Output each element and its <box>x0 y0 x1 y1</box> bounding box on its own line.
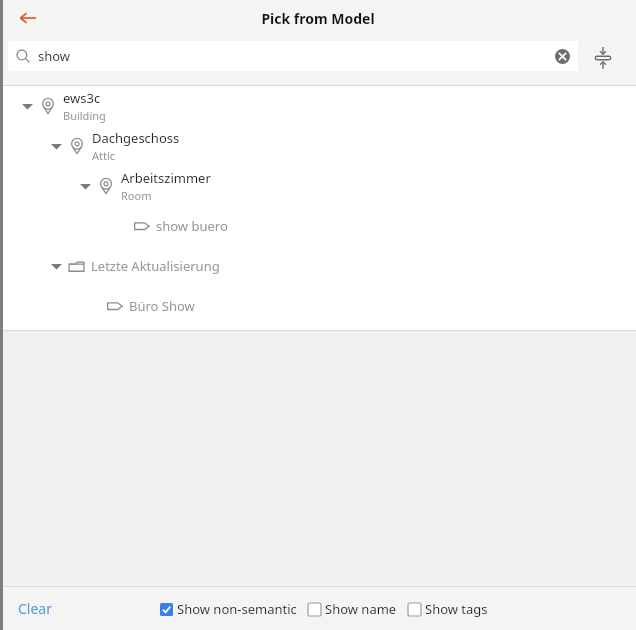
staticText: Clear <box>18 599 52 618</box>
staticText: Pick from Model <box>261 9 375 28</box>
button[interactable]: Show name <box>308 596 397 622</box>
staticText: Arbeitszimmer <box>121 169 211 187</box>
button[interactable]: ews3c <box>0 86 636 126</box>
button[interactable]: Show tags <box>408 596 488 622</box>
staticText: Dachgeschoss <box>92 129 180 147</box>
staticText: Show non-semantic <box>177 600 297 618</box>
button[interactable]: Collapse all <box>586 41 620 75</box>
button[interactable]: Arbeitszimmer <box>0 166 636 206</box>
staticText: Büro Show <box>129 297 195 315</box>
staticText: Room <box>121 188 152 203</box>
staticText: show <box>38 47 71 65</box>
button[interactable]: Letzte Aktualisierung <box>0 246 636 286</box>
button[interactable]: Show non-semantic <box>160 596 297 622</box>
button[interactable]: Back <box>12 2 44 34</box>
button[interactable]: show buero <box>0 206 636 246</box>
button[interactable]: Clear <box>12 595 58 622</box>
staticText: Show tags <box>425 600 488 618</box>
staticText: Letzte Aktualisierung <box>91 257 220 275</box>
button[interactable]: show <box>8 41 578 71</box>
staticText: Building <box>63 108 106 123</box>
staticText: Show name <box>325 600 397 618</box>
staticText: show buero <box>156 217 228 235</box>
staticText: ews3c <box>63 89 101 107</box>
button[interactable]: Clear search <box>552 46 572 66</box>
button[interactable]: Dachgeschoss <box>0 126 636 166</box>
staticText: Attic <box>92 148 116 163</box>
button[interactable]: Büro Show <box>0 286 636 326</box>
